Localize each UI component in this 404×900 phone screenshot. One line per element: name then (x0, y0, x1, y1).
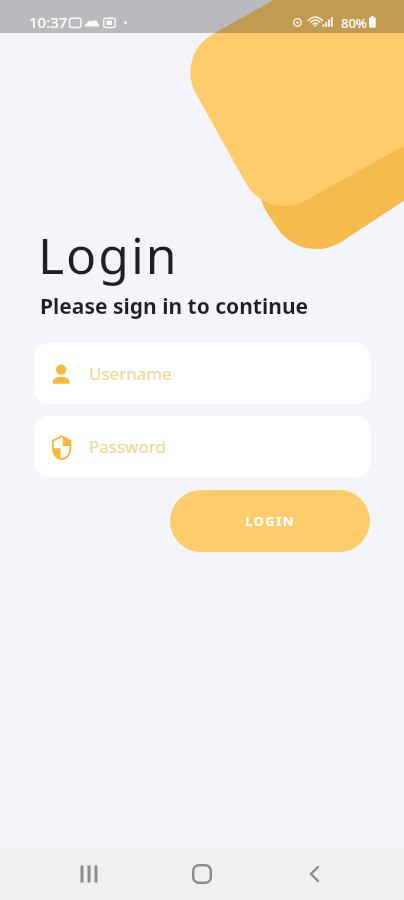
staticText: 80% (341, 14, 367, 32)
staticText: 10:37 (29, 12, 68, 32)
staticText: Please sign in to continue (40, 292, 309, 321)
staticText: Username (89, 362, 172, 385)
button[interactable]: Username (34, 343, 370, 404)
button[interactable]: Home (182, 854, 222, 894)
button[interactable]: Back (295, 854, 335, 894)
staticText: Password (89, 435, 166, 458)
button[interactable]: Recent apps (68, 854, 108, 894)
button[interactable]: LOGIN (170, 490, 370, 552)
button[interactable]: Password (34, 416, 370, 477)
staticText: LOGIN (245, 512, 295, 530)
staticText: Login (38, 221, 179, 289)
